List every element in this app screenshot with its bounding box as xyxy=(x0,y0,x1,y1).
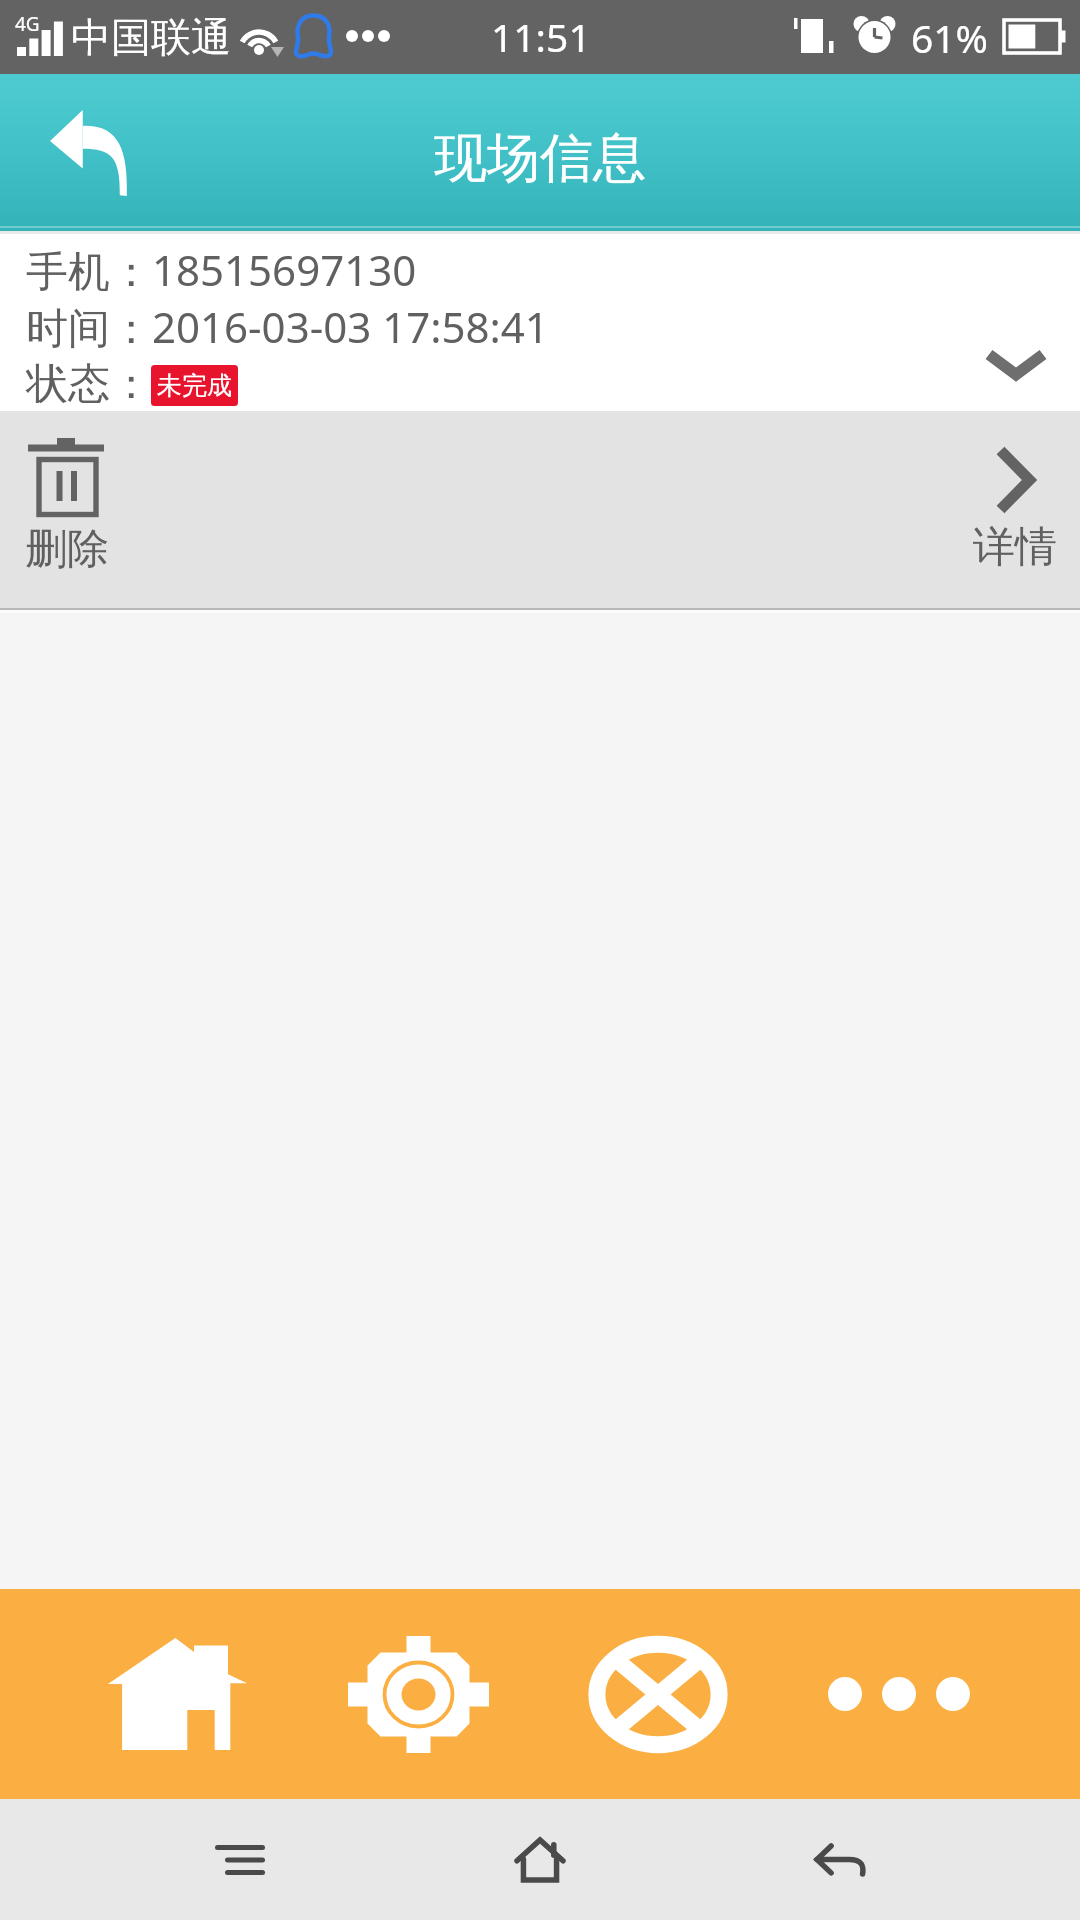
staticText: 中国联通 xyxy=(71,12,231,62)
button[interactable]: Recent apps xyxy=(150,1799,330,1920)
staticText: 状态： xyxy=(26,358,152,411)
button[interactable]: Tools xyxy=(569,1589,747,1799)
staticText: 4G xyxy=(15,11,40,37)
staticText: 11:51 xyxy=(491,10,591,63)
button[interactable]: Home xyxy=(450,1799,630,1920)
staticText: 删除 xyxy=(25,523,109,576)
button[interactable]: Home xyxy=(88,1589,267,1799)
button[interactable]: More xyxy=(809,1589,989,1799)
staticText: 现场信息 xyxy=(434,125,646,192)
button[interactable]: 删除 xyxy=(8,411,128,591)
staticText: 手机：18515697130 xyxy=(26,241,417,298)
staticText: 时间：2016-03-03 17:58:41 xyxy=(26,298,549,355)
button[interactable]: Back xyxy=(30,93,148,213)
button[interactable]: Expand xyxy=(953,316,1079,411)
staticText: 61% xyxy=(911,11,989,64)
staticText: 详情 xyxy=(973,521,1057,574)
button[interactable]: 手机：18515697130 xyxy=(0,231,1080,411)
button[interactable]: 详情 xyxy=(960,411,1080,591)
staticText: 未完成 xyxy=(157,370,232,401)
button[interactable]: Back xyxy=(750,1799,930,1920)
button[interactable]: Settings xyxy=(328,1589,508,1799)
